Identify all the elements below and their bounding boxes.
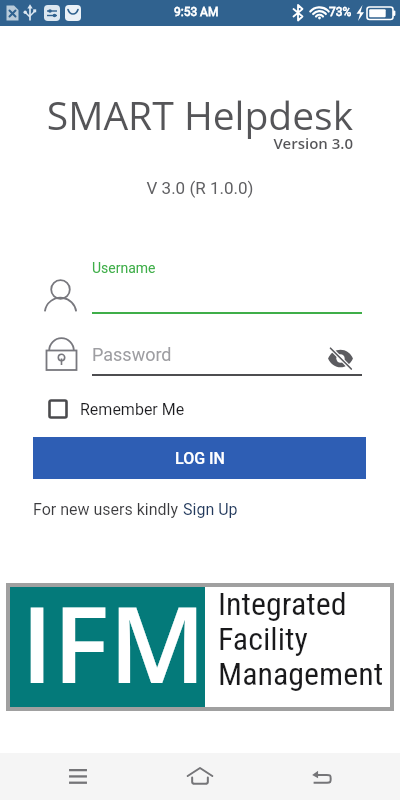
staticText: LOG IN — [175, 449, 225, 468]
button[interactable]: Show password — [327, 345, 354, 372]
staticText: For new users kindly — [33, 500, 183, 519]
staticText: Version 3.0 — [0, 133, 353, 153]
staticText: IFM — [21, 571, 206, 691]
staticText: Username — [92, 260, 156, 276]
staticText: V 3.0 (R 1.0.0) — [0, 178, 400, 198]
button[interactable]: Back — [302, 756, 342, 796]
staticText: 9:53 AM — [174, 5, 219, 19]
staticText: Management — [218, 655, 384, 693]
staticText: Password — [92, 344, 172, 365]
staticText: SMART Helpdesk — [0, 88, 400, 141]
button[interactable]: LOG IN — [33, 437, 366, 479]
button[interactable]: Recent apps — [58, 756, 98, 796]
staticText: Integrated — [218, 585, 347, 623]
staticText: Facility — [218, 620, 308, 658]
button[interactable]: Sign Up — [183, 500, 238, 519]
staticText: Remember Me — [80, 400, 185, 419]
staticText: 73% — [329, 5, 352, 19]
button[interactable]: Home — [180, 756, 220, 796]
button[interactable]: Remember Me — [46, 394, 185, 424]
staticText: Sign Up — [183, 500, 238, 519]
